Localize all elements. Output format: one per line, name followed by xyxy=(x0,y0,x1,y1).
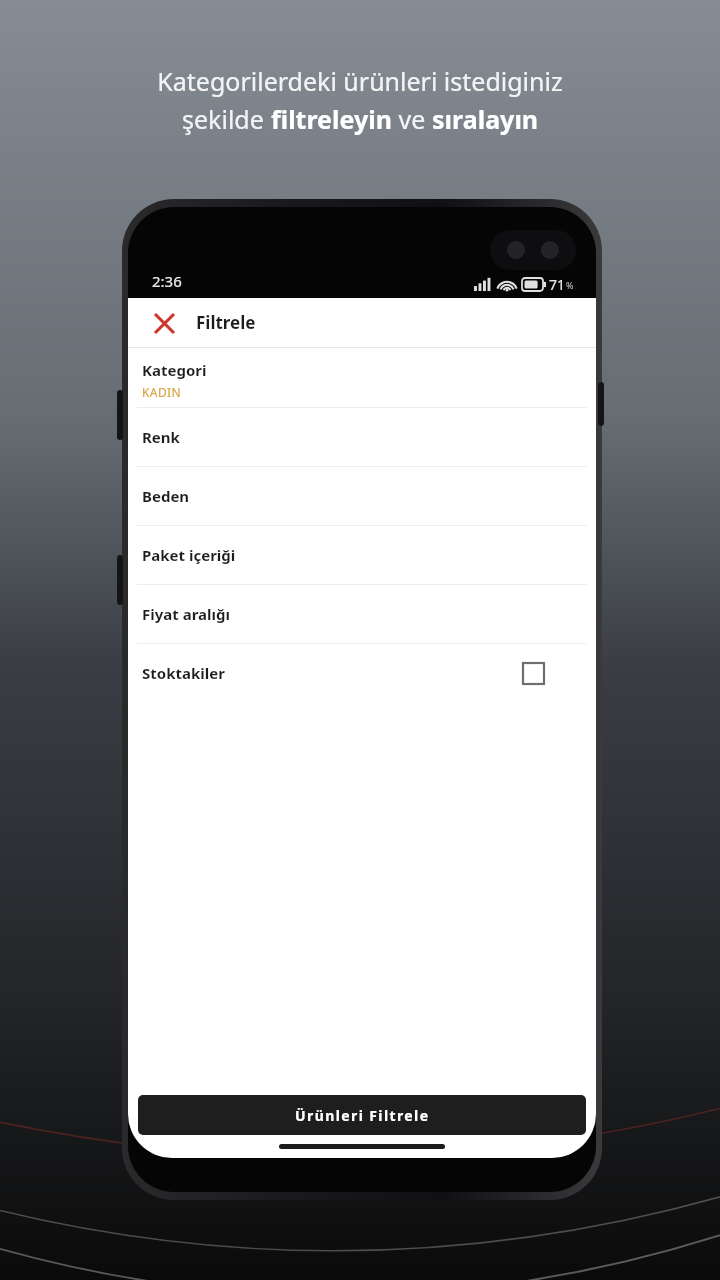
staticText: Kategori xyxy=(142,360,207,380)
staticText: şekilde xyxy=(182,102,271,136)
staticText: sıralayın xyxy=(432,102,539,136)
staticText: Kategorilerdeki ürünleri istediginiz xyxy=(157,64,563,98)
staticText: 2:36 xyxy=(152,271,182,291)
staticText: Paket içeriği xyxy=(142,545,236,565)
button[interactable]: Close xyxy=(142,301,186,345)
button[interactable]: Renk xyxy=(128,408,596,466)
staticText: Ürünleri Filtrele xyxy=(295,1106,430,1125)
button[interactable]: Stoktakiler xyxy=(128,644,596,702)
button[interactable]: Fiyat aralığı xyxy=(128,585,596,643)
staticText: KADIN xyxy=(142,384,182,400)
staticText: filtreleyin xyxy=(271,102,392,136)
staticText: ve xyxy=(392,102,432,136)
button[interactable]: Kategori xyxy=(128,352,596,407)
staticText: Renk xyxy=(142,427,180,447)
staticText: Filtrele xyxy=(196,311,256,334)
staticText: % xyxy=(566,279,574,291)
button[interactable]: Paket içeriği xyxy=(128,526,596,584)
button[interactable]: Ürünleri Filtrele xyxy=(138,1095,586,1135)
button[interactable]: Beden xyxy=(128,467,596,525)
staticText: Beden xyxy=(142,486,190,506)
staticText: Stoktakiler xyxy=(142,663,225,683)
staticText: 71 xyxy=(549,275,566,294)
staticText: Fiyat aralığı xyxy=(142,604,230,624)
